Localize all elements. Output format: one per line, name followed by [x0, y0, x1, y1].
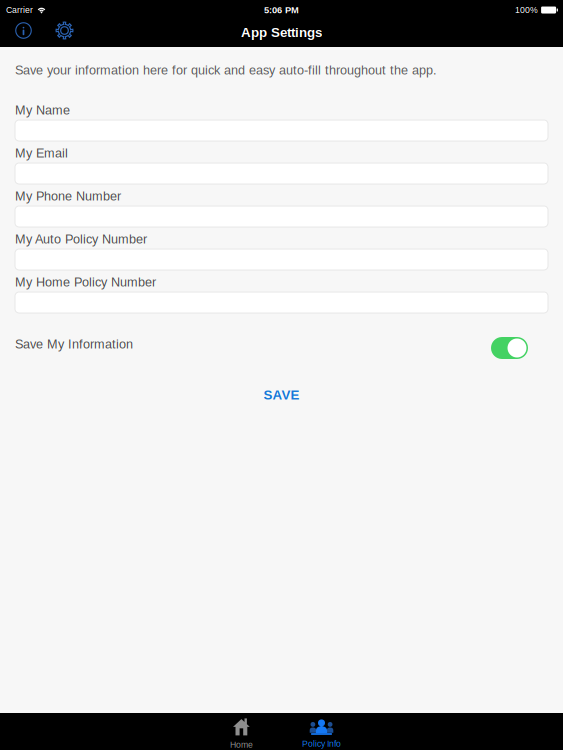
staticText: 5:06 PM: [264, 5, 299, 15]
button[interactable]: Save My Information: [491, 335, 548, 359]
staticText: App Settings: [241, 25, 322, 40]
staticText: My Name: [15, 103, 70, 117]
staticText: Policy Info: [302, 739, 341, 749]
button[interactable]: Settings: [51, 19, 78, 42]
staticText: My Phone Number: [15, 189, 121, 203]
staticText: My Auto Policy Number: [15, 232, 147, 246]
staticText: 100%: [515, 5, 538, 15]
staticText: Home: [230, 740, 253, 750]
staticText: My Email: [15, 146, 68, 160]
button[interactable]: Policy Info: [281, 713, 361, 750]
staticText: Save My Information: [15, 337, 133, 351]
staticText: Save your information here for quick and…: [15, 63, 437, 77]
button[interactable]: SAVE: [15, 388, 548, 402]
button[interactable]: Home: [201, 713, 281, 750]
staticText: SAVE: [263, 388, 299, 402]
button[interactable]: Information: [10, 19, 37, 42]
staticText: My Home Policy Number: [15, 275, 156, 289]
staticText: Carrier: [6, 5, 33, 15]
